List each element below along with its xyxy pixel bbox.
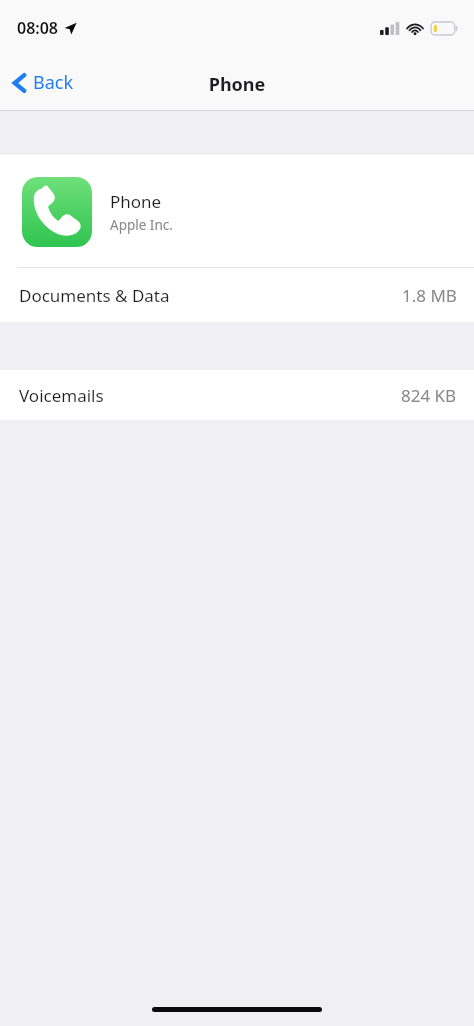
staticText: Voicemails: [19, 384, 104, 407]
button[interactable]: Back: [8, 66, 78, 99]
staticText: Documents & Data: [19, 284, 170, 307]
staticText: 08:08: [17, 17, 59, 39]
staticText: 824 KB: [401, 384, 457, 407]
staticText: Apple Inc.: [110, 216, 173, 234]
staticText: Back: [33, 70, 74, 95]
button[interactable]: Phone app icon: [0, 155, 474, 268]
staticText: 1.8 MB: [402, 284, 457, 307]
button[interactable]: Documents & Data: [0, 268, 474, 322]
staticText: Phone: [0, 72, 474, 97]
button[interactable]: Voicemails: [0, 370, 474, 420]
staticText: Phone: [110, 190, 162, 213]
other: Phone app icon: [22, 177, 92, 247]
